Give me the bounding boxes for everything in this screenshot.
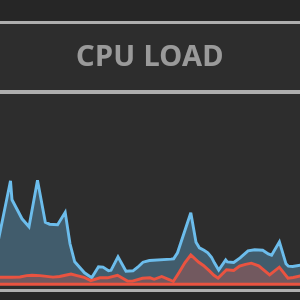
button[interactable]: CPU LOAD [0, 24, 300, 90]
staticText: CPU LOAD [76, 35, 224, 74]
